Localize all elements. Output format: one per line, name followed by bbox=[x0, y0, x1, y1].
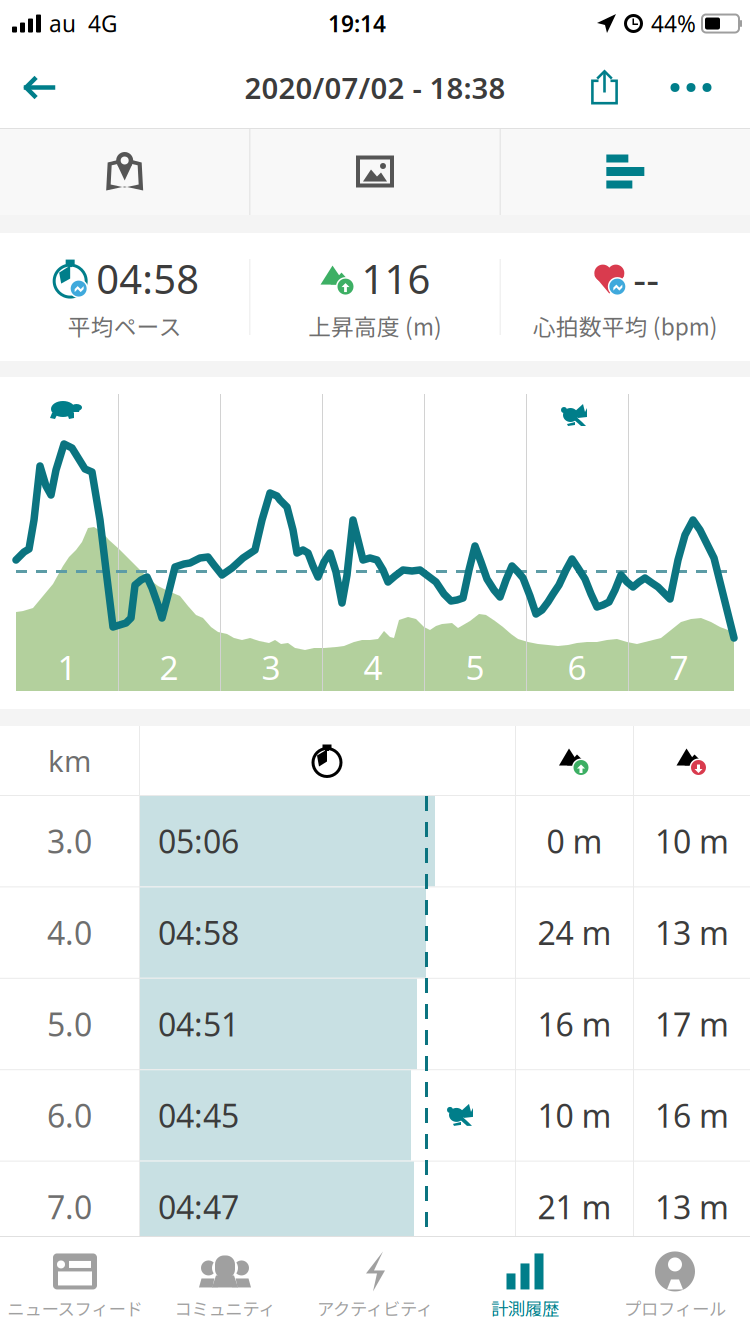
staticText: 04:51 bbox=[158, 1003, 239, 1045]
staticText: 7 bbox=[669, 645, 688, 689]
staticText: 05:06 bbox=[158, 820, 239, 862]
staticText: 7.0 bbox=[47, 1186, 92, 1228]
staticText: アクティビティ bbox=[317, 1295, 433, 1321]
staticText: 10 m bbox=[537, 1094, 611, 1137]
staticText: 17 m bbox=[655, 1003, 729, 1045]
staticText: 6 bbox=[567, 645, 586, 689]
staticText: km bbox=[48, 741, 91, 780]
staticText: 5 bbox=[465, 645, 484, 689]
button[interactable]: Back bbox=[0, 47, 78, 128]
staticText: 4G bbox=[88, 8, 118, 38]
button[interactable]: コミュニティ bbox=[150, 1236, 300, 1334]
staticText: 24 m bbox=[537, 911, 611, 954]
staticText: 21 m bbox=[537, 1186, 611, 1228]
staticText: 116 bbox=[361, 252, 430, 305]
staticText: 4.0 bbox=[47, 911, 92, 954]
staticText: 計測履歴 bbox=[491, 1295, 559, 1321]
staticText: au bbox=[49, 8, 76, 38]
staticText: ニュースフィード bbox=[7, 1295, 142, 1321]
button[interactable]: 計測履歴 bbox=[450, 1236, 600, 1334]
staticText: 04:58 bbox=[158, 911, 239, 954]
staticText: 13 m bbox=[655, 1186, 729, 1228]
button[interactable]: プロフィール bbox=[600, 1236, 750, 1334]
staticText: 心拍数平均 (bpm) bbox=[533, 309, 718, 342]
staticText: 平均ペース bbox=[68, 309, 182, 342]
staticText: 19:14 bbox=[328, 8, 386, 38]
button[interactable]: Map bbox=[0, 128, 249, 215]
button[interactable]: アクティビティ bbox=[300, 1236, 450, 1334]
staticText: 04:58 bbox=[96, 252, 199, 305]
staticText: 16 m bbox=[655, 1094, 729, 1137]
staticText: 4 bbox=[363, 645, 382, 689]
staticText: 6.0 bbox=[47, 1094, 92, 1137]
staticText: 0 m bbox=[546, 820, 602, 862]
staticText: 16 m bbox=[537, 1003, 611, 1045]
staticText: 2 bbox=[159, 645, 178, 689]
staticText: 10 m bbox=[655, 820, 729, 862]
staticText: 13 m bbox=[655, 911, 729, 954]
staticText: コミュニティ bbox=[174, 1295, 275, 1321]
button[interactable]: Share bbox=[557, 47, 652, 128]
staticText: 上昇高度 (m) bbox=[308, 309, 442, 342]
staticText: 44% bbox=[651, 8, 696, 38]
staticText: 04:45 bbox=[158, 1094, 239, 1137]
staticText: -- bbox=[633, 252, 659, 305]
button[interactable]: Splits bbox=[501, 128, 750, 215]
staticText: プロフィール bbox=[624, 1295, 726, 1321]
staticText: 3.0 bbox=[47, 820, 92, 862]
button[interactable]: ニュースフィード bbox=[0, 1236, 150, 1334]
button[interactable]: Photos bbox=[250, 128, 500, 215]
button[interactable]: More options bbox=[652, 47, 730, 128]
staticText: 1 bbox=[57, 645, 76, 689]
staticText: 04:47 bbox=[158, 1186, 239, 1228]
staticText: 5.0 bbox=[47, 1003, 92, 1045]
staticText: 3 bbox=[261, 645, 280, 689]
staticText: 2020/07/02 - 18:38 bbox=[244, 68, 505, 107]
